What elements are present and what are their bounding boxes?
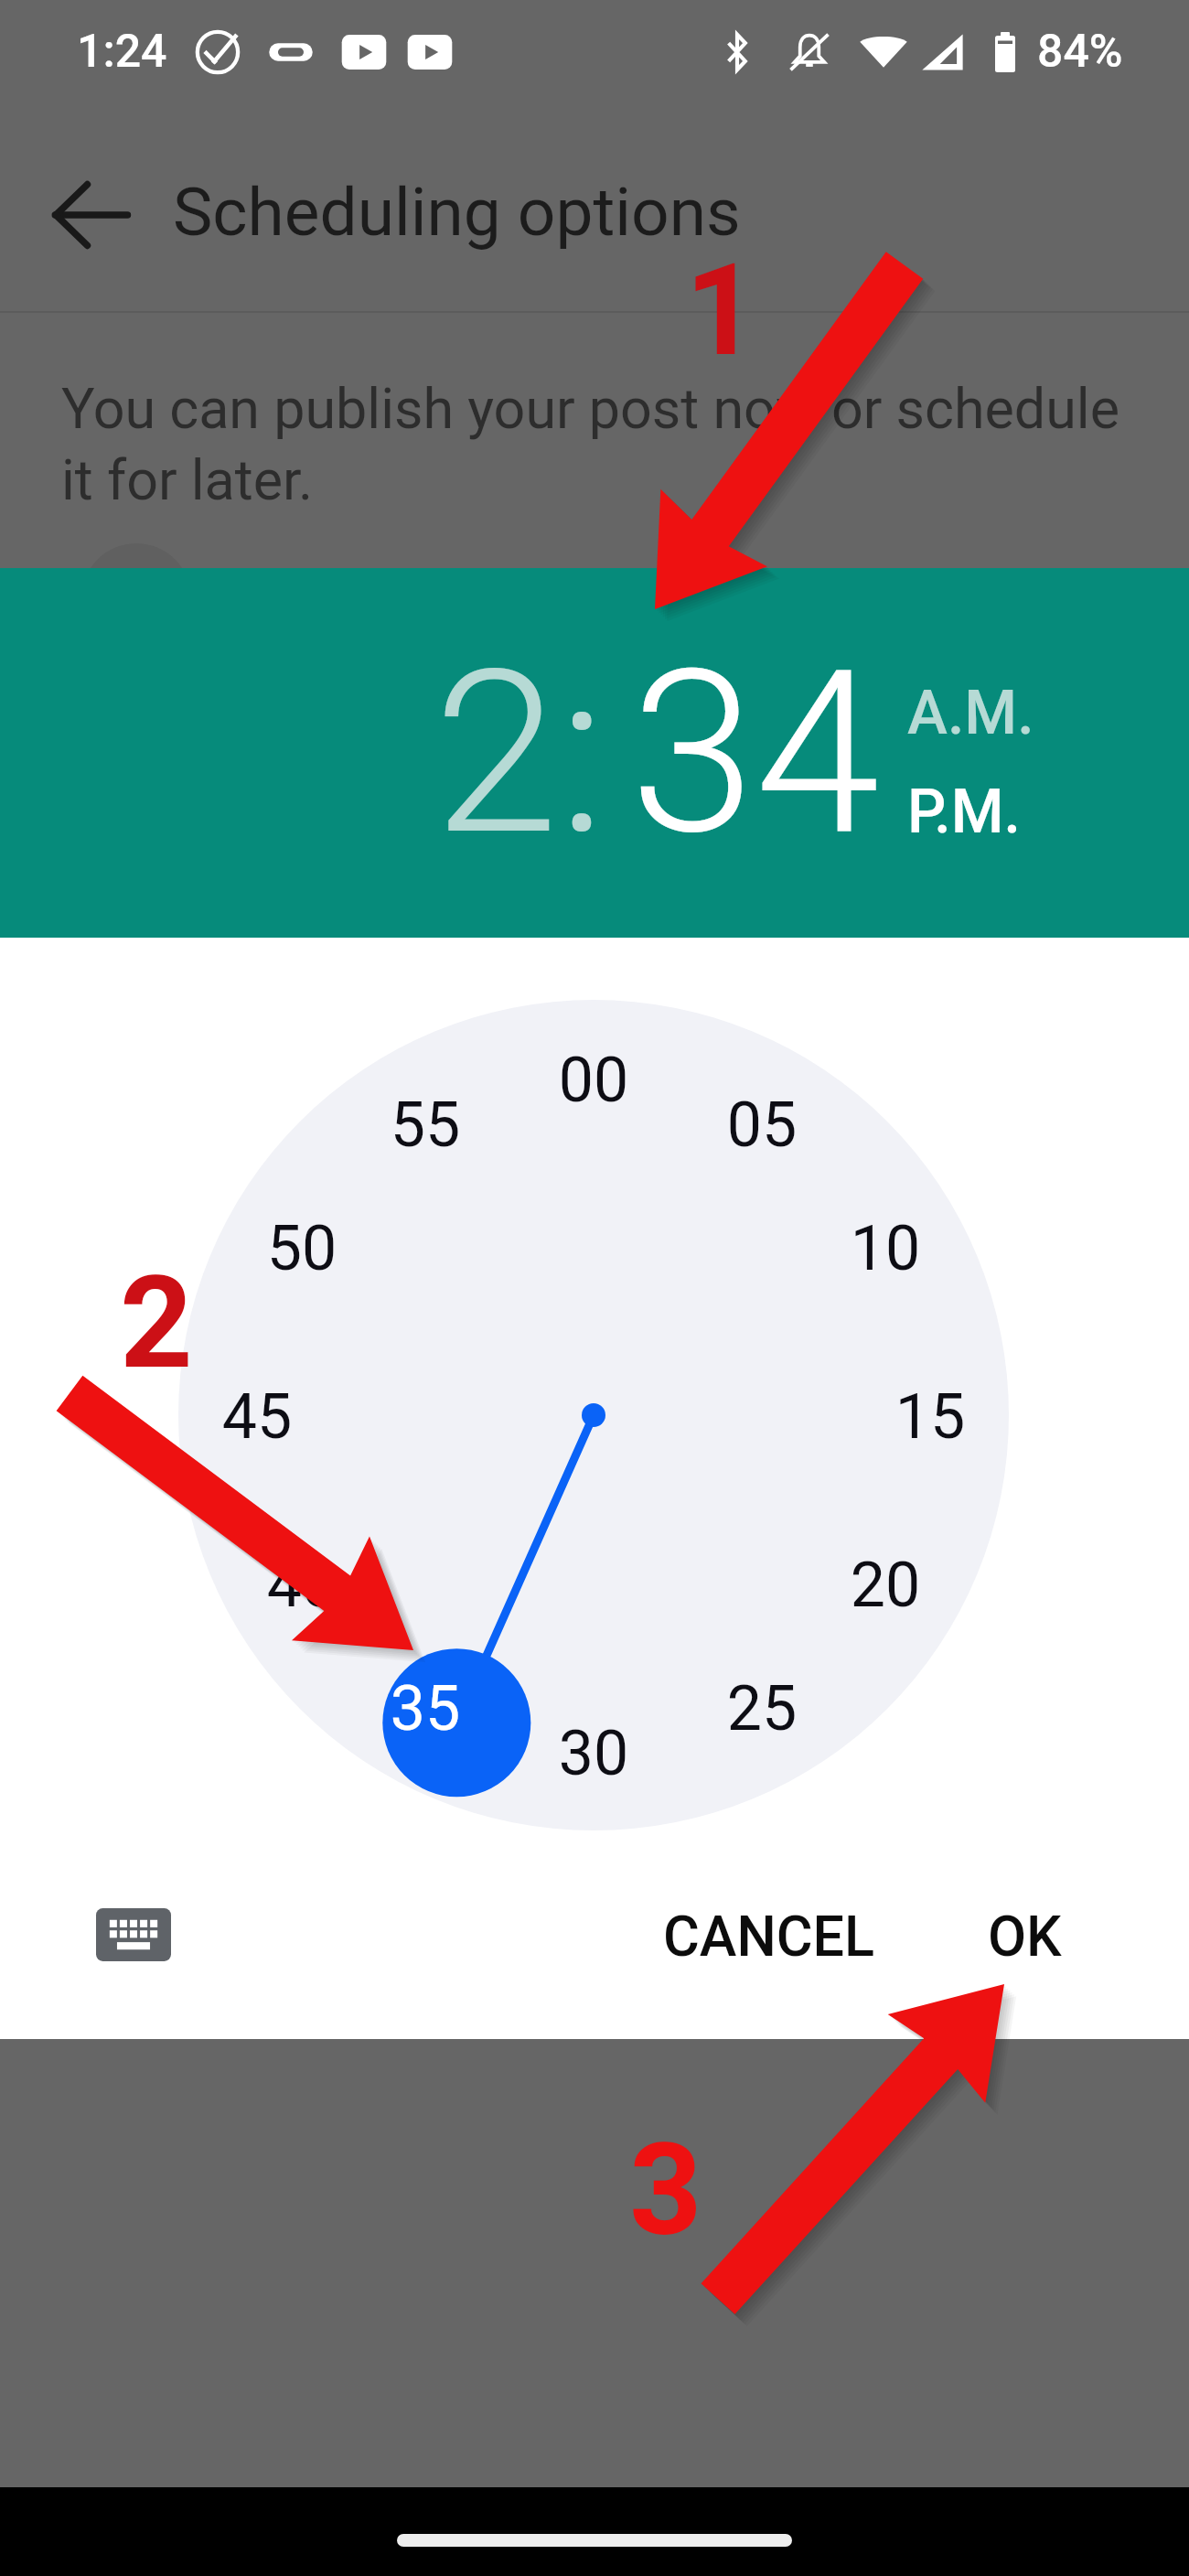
- button[interactable]: 30: [539, 1717, 648, 1790]
- staticText: P.M.: [907, 777, 1021, 847]
- staticText: 1:24: [77, 25, 167, 79]
- button[interactable]: 25: [707, 1672, 817, 1745]
- button[interactable]: 55: [370, 1089, 480, 1162]
- button[interactable]: OK: [962, 1882, 1087, 1991]
- staticText: A.M.: [907, 678, 1034, 748]
- button[interactable]: CANCEL: [637, 1882, 901, 1991]
- button[interactable]: 00: [539, 1044, 648, 1117]
- button[interactable]: 40: [247, 1549, 357, 1622]
- button[interactable]: Back: [38, 163, 143, 267]
- staticText: Scheduling options: [173, 173, 741, 252]
- staticText: OK: [988, 1904, 1062, 1969]
- button[interactable]: 15: [875, 1380, 985, 1454]
- button[interactable]: 50: [247, 1212, 357, 1285]
- button[interactable]: 05: [707, 1089, 817, 1162]
- button[interactable]: 45: [202, 1380, 312, 1454]
- button[interactable]: 2:: [434, 622, 606, 885]
- staticText: 2: [120, 1249, 193, 1398]
- button[interactable]: Switch to text input: [79, 1880, 188, 1990]
- staticText: 3: [629, 2116, 702, 2265]
- button[interactable]: A.M.: [907, 678, 1034, 748]
- button[interactable]: P.M.: [907, 777, 1021, 847]
- button[interactable]: 10: [830, 1212, 940, 1285]
- button[interactable]: 35: [370, 1672, 480, 1745]
- staticText: You can publish your post now or schedul…: [61, 376, 1120, 513]
- button[interactable]: 34: [630, 622, 880, 885]
- staticText: 84%: [1037, 25, 1123, 79]
- staticText: CANCEL: [663, 1904, 875, 1969]
- button[interactable]: 20: [830, 1549, 940, 1622]
- staticText: 1: [685, 236, 758, 385]
